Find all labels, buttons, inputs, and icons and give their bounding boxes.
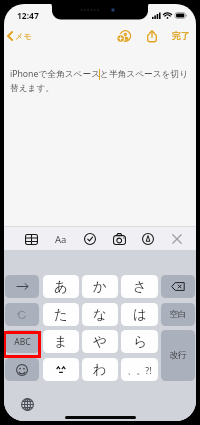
button[interactable]: わ bbox=[82, 358, 118, 381]
button[interactable]: や bbox=[82, 330, 118, 353]
button[interactable]: 改行 bbox=[161, 330, 195, 381]
staticText: 空白 bbox=[169, 309, 187, 320]
button[interactable]: Change keyboard bbox=[18, 395, 36, 413]
staticText: 改行 bbox=[169, 350, 187, 361]
button[interactable]: メモ bbox=[4, 31, 36, 41]
staticText: な bbox=[93, 306, 107, 323]
button[interactable]: Markup bbox=[138, 228, 158, 250]
button[interactable]: 完了 bbox=[169, 24, 193, 48]
staticText: ら bbox=[133, 333, 147, 350]
button[interactable]: あ bbox=[43, 275, 79, 298]
staticText: 12:47 bbox=[17, 10, 39, 22]
button[interactable]: Checklist bbox=[80, 228, 100, 250]
staticText: Aa bbox=[55, 233, 67, 246]
button[interactable]: ら bbox=[121, 330, 158, 353]
staticText: ABC bbox=[14, 336, 31, 348]
button[interactable]: Emoji bbox=[5, 358, 39, 381]
button[interactable]: Delete bbox=[161, 275, 195, 298]
button[interactable]: ま bbox=[43, 330, 79, 353]
button[interactable]: さ bbox=[121, 275, 158, 298]
button[interactable]: な bbox=[82, 303, 118, 326]
staticText: か bbox=[93, 278, 107, 295]
button[interactable]: か bbox=[82, 275, 118, 298]
button[interactable]: 、。?! bbox=[121, 358, 158, 381]
staticText: あ bbox=[54, 278, 68, 295]
staticText: や bbox=[93, 333, 107, 350]
button[interactable]: Table bbox=[21, 228, 41, 250]
staticText: は bbox=[133, 306, 147, 323]
button[interactable]: は bbox=[121, 303, 158, 326]
button[interactable]: Share bbox=[144, 24, 160, 48]
button[interactable]: Camera bbox=[109, 228, 129, 250]
button[interactable]: ABC bbox=[5, 330, 39, 353]
staticText: メモ bbox=[15, 31, 32, 41]
staticText: た bbox=[54, 306, 68, 323]
staticText: 完了 bbox=[172, 31, 190, 42]
staticText: ま bbox=[54, 333, 68, 350]
staticText: iPhoneで全角スペースと半角スペースを切り替えます。 bbox=[10, 68, 194, 94]
staticText: わ bbox=[93, 361, 107, 378]
button[interactable]: Close bbox=[167, 228, 187, 250]
button[interactable]: Undo bbox=[5, 303, 39, 326]
button[interactable] bbox=[43, 358, 79, 381]
button[interactable]: Next candidate bbox=[5, 275, 39, 298]
button[interactable]: Add people bbox=[114, 24, 134, 48]
button[interactable]: た bbox=[43, 303, 79, 326]
staticText: 、。?! bbox=[127, 364, 152, 376]
staticText: さ bbox=[133, 278, 147, 295]
button[interactable]: Aa bbox=[51, 229, 71, 249]
button[interactable]: 空白 bbox=[161, 303, 195, 326]
